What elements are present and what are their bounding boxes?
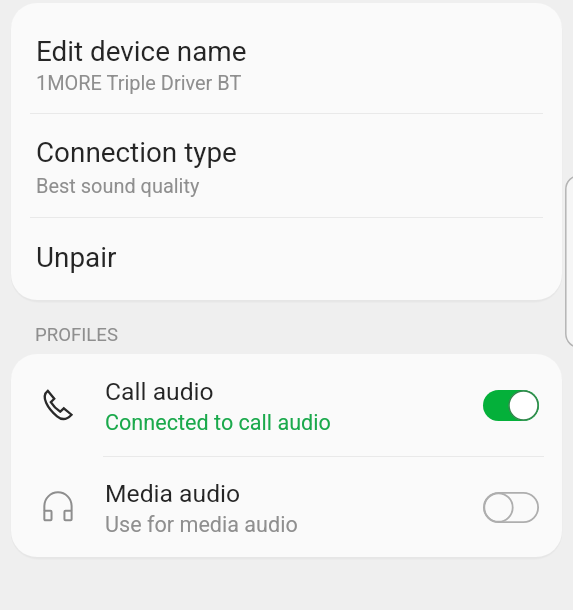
staticText: Unpair	[36, 241, 117, 274]
button[interactable]: Call audio	[11, 354, 562, 456]
staticText: Media audio	[105, 479, 241, 508]
staticText: 1MORE Triple Driver BT	[36, 71, 242, 94]
button[interactable]: Edit device name	[11, 3, 562, 113]
staticText: Use for media audio	[105, 512, 298, 537]
staticText: Best sound quality	[36, 174, 200, 197]
staticText: Edit device name	[36, 35, 247, 68]
button[interactable]: Media audio switch, off	[483, 492, 539, 523]
staticText: Connection type	[36, 136, 237, 169]
button[interactable]: Call audio switch, on	[483, 390, 539, 421]
other: Call audio	[41, 389, 73, 421]
button[interactable]: Media audio	[11, 457, 562, 557]
button[interactable]: Connection type	[11, 114, 562, 218]
button[interactable]: Unpair	[11, 217, 562, 300]
other: Media audio	[43, 491, 74, 522]
staticText: Connected to call audio	[105, 410, 331, 435]
staticText: Call audio	[105, 377, 214, 406]
staticText: PROFILES	[35, 324, 118, 346]
